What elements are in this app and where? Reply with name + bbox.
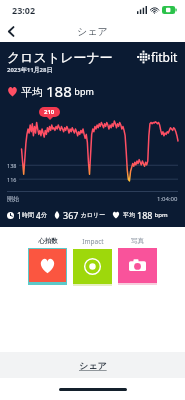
staticText: Impact [82,237,104,246]
staticText: シェア [79,360,107,371]
staticText: 4 [36,210,41,221]
button[interactable]: シェア [0,352,185,378]
button[interactable]: Impact [73,237,112,286]
staticText: fitbit [151,49,178,65]
staticText: 23:02 [12,4,36,16]
staticText: 平均 [21,84,46,99]
staticText: bpm [153,211,168,219]
staticText: 116 [7,176,17,183]
staticText: 分 [41,211,47,219]
button[interactable]: Photo [118,237,157,285]
staticText: 188 [46,81,72,101]
staticText: カロリー [79,211,105,219]
staticText: 開始 [7,195,19,203]
staticText: 時間 [22,211,36,219]
staticText: bpm [72,85,94,97]
staticText: 367 [63,209,79,221]
button[interactable]: Back [0,20,22,42]
staticText: 1:04:00 [157,195,178,203]
button[interactable]: Heart rate [28,237,67,285]
staticText: シェア [77,25,108,38]
staticText: 心拍数 [38,237,58,245]
staticText: 写真 [131,237,144,245]
staticText: 210 [44,108,55,116]
staticText: 188 [137,209,153,221]
staticText: クロストレーナー [7,49,113,65]
staticText: 1 [17,210,22,221]
staticText: 138 [7,162,17,169]
staticText: 平均 [123,211,137,219]
staticText: 2023年11月28日 [7,66,53,74]
